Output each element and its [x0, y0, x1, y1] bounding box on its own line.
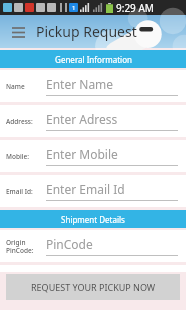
staticText: Name: [6, 82, 25, 91]
staticText: Email Id:: [6, 187, 33, 196]
staticText: Enter Email Id: [46, 181, 125, 197]
staticText: Shipment Details: [61, 214, 125, 225]
button[interactable]: Mobile:: [0, 140, 186, 172]
button[interactable]: Address:: [0, 105, 186, 137]
button[interactable]: REQUEST YOUR PICKUP NOW: [6, 274, 180, 300]
staticText: Enter Mobile: [46, 146, 118, 162]
button[interactable]: Email Id:: [0, 175, 186, 207]
button[interactable]: Name: [0, 70, 186, 102]
staticText: Mobile:: [6, 152, 29, 161]
button[interactable]: Origin PinCode:: [0, 230, 186, 262]
button[interactable]: Shipment Details: [0, 210, 186, 228]
staticText: Enter Name: [46, 76, 114, 92]
staticText: Enter Adress: [46, 111, 118, 127]
staticText: 1: [72, 4, 76, 12]
staticText: PinCode: [46, 236, 93, 252]
staticText: REQUEST YOUR PICKUP NOW: [31, 281, 156, 293]
staticText: Pickup Request: [36, 22, 137, 41]
staticText: 9:29 AM: [116, 1, 154, 15]
staticText: General Information: [55, 54, 132, 65]
staticText: Address:: [6, 117, 33, 126]
button[interactable]: General Information: [0, 50, 186, 68]
staticText: Origin PinCode:: [6, 238, 34, 255]
button[interactable]: Open navigation menu: [8, 22, 28, 42]
